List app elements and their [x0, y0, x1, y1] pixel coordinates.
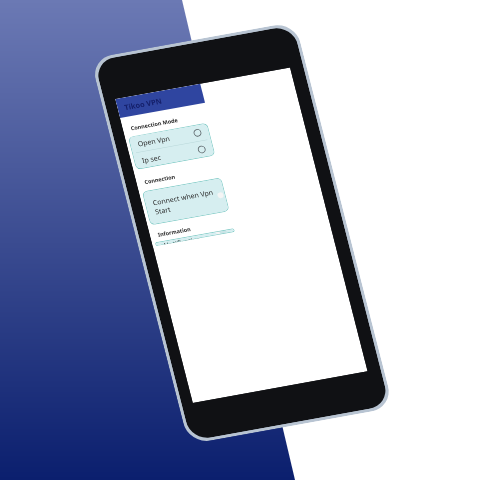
staticText: Information: [157, 225, 191, 238]
staticText: Ip sec: [141, 153, 162, 165]
staticText: Open Vpn: [137, 134, 171, 148]
button[interactable]: Notification: [155, 228, 235, 246]
button[interactable]: Connect when Vpn Start: [142, 177, 230, 225]
button[interactable]: Tikoo VPN: [115, 84, 205, 118]
staticText: Connect when Vpn Start: [152, 187, 220, 216]
staticText: Connection Mode: [130, 116, 179, 132]
staticText: Tikoo VPN: [123, 96, 163, 112]
button[interactable]: Ip sec: [132, 139, 215, 170]
staticText: Connection: [144, 173, 176, 186]
staticText: Notification: [163, 234, 201, 245]
button[interactable]: Open Vpn: [128, 123, 211, 153]
